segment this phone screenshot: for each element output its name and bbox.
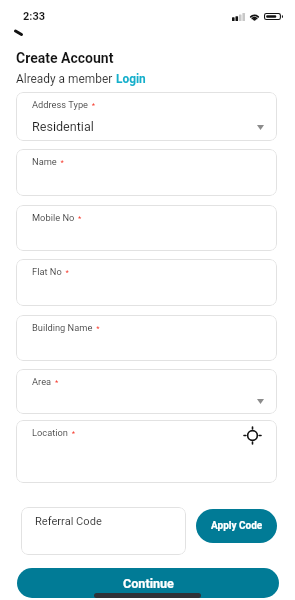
staticText: Continue <box>123 576 174 591</box>
button[interactable]: Location * <box>16 420 277 483</box>
button[interactable]: Mobile No * <box>16 205 277 251</box>
button[interactable]: Continue <box>17 568 279 598</box>
staticText: Mobile No * <box>32 212 82 223</box>
staticText: Name * <box>32 156 64 167</box>
button[interactable]: Building Name * <box>16 315 277 361</box>
staticText: Residential <box>32 119 94 134</box>
staticText: Location * <box>32 427 76 438</box>
button[interactable]: Area * <box>16 369 277 414</box>
button[interactable]: Apply Code <box>196 509 277 543</box>
button[interactable]: Address Type * <box>16 92 277 141</box>
staticText: Apply Code <box>211 520 263 532</box>
staticText: 2:33 <box>23 10 46 23</box>
button[interactable]: Use current location <box>242 425 262 445</box>
button[interactable]: Referral Code <box>21 507 186 555</box>
staticText: Referral Code <box>35 515 102 528</box>
button[interactable]: Name * <box>16 149 277 196</box>
staticText: Area * <box>32 376 59 387</box>
staticText: Already a member <box>16 72 113 86</box>
staticText: Address Type * <box>32 99 96 110</box>
staticText: Flat No * <box>32 266 69 277</box>
button[interactable]: Login <box>116 72 146 86</box>
staticText: Create Account <box>16 50 114 66</box>
staticText: Building Name * <box>32 322 100 333</box>
button[interactable]: Flat No * <box>16 259 277 306</box>
